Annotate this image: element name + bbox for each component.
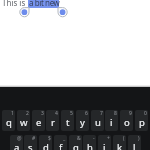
button[interactable]: g xyxy=(69,135,82,150)
staticText: w xyxy=(20,116,28,129)
button[interactable]: a xyxy=(10,135,23,150)
staticText: p xyxy=(139,116,145,129)
staticText: 1 xyxy=(11,110,14,117)
button[interactable]: d xyxy=(39,135,52,150)
staticText: _ xyxy=(63,135,66,142)
staticText: ( xyxy=(123,135,125,142)
staticText: 0 xyxy=(144,110,147,117)
staticText: y xyxy=(80,116,85,129)
staticText: u xyxy=(95,116,101,129)
staticText: 7 xyxy=(100,110,103,117)
staticText: i xyxy=(110,116,113,129)
staticText: 3 xyxy=(41,110,44,117)
staticText: g xyxy=(73,141,79,150)
button[interactable]: y xyxy=(76,110,89,131)
button[interactable]: e xyxy=(32,110,45,131)
staticText: + xyxy=(107,135,110,142)
staticText: @ xyxy=(17,135,22,142)
staticText: # xyxy=(32,135,36,142)
button[interactable]: l xyxy=(128,135,141,150)
staticText: f xyxy=(59,141,63,150)
button[interactable]: w xyxy=(17,110,30,131)
staticText: l xyxy=(133,141,136,150)
button[interactable]: u xyxy=(91,110,104,131)
staticText: s xyxy=(28,141,33,150)
staticText: q xyxy=(6,116,12,129)
staticText: 5 xyxy=(70,110,73,117)
staticText: 6 xyxy=(85,110,88,117)
button[interactable]: q xyxy=(2,110,15,131)
staticText: r xyxy=(51,116,55,129)
staticText: 9 xyxy=(129,110,132,117)
button[interactable]: r xyxy=(46,110,59,131)
staticText: d xyxy=(43,141,49,150)
staticText: This is xyxy=(2,0,26,8)
staticText: t xyxy=(66,116,70,129)
button[interactable]: f xyxy=(54,135,67,150)
button[interactable]: j xyxy=(98,135,111,150)
button[interactable]: h xyxy=(83,135,96,150)
staticText: - xyxy=(93,135,95,142)
staticText: j xyxy=(103,141,106,150)
button[interactable]: i xyxy=(105,110,118,131)
button[interactable]: p xyxy=(135,110,148,131)
button[interactable]: k xyxy=(113,135,126,150)
staticText: 8 xyxy=(114,110,117,117)
staticText: k xyxy=(117,141,123,150)
staticText: a xyxy=(14,141,20,150)
staticText: h xyxy=(87,141,93,150)
staticText: a bit new xyxy=(29,0,60,8)
staticText: 4 xyxy=(55,110,58,117)
button[interactable]: t xyxy=(61,110,74,131)
staticText: o xyxy=(124,116,130,129)
button[interactable]: s xyxy=(24,135,37,150)
button[interactable]: o xyxy=(120,110,133,131)
staticText: 2 xyxy=(26,110,29,117)
staticText: e xyxy=(36,116,42,129)
staticText: & xyxy=(77,135,81,142)
staticText: ) xyxy=(138,135,140,142)
staticText: $ xyxy=(48,135,51,142)
